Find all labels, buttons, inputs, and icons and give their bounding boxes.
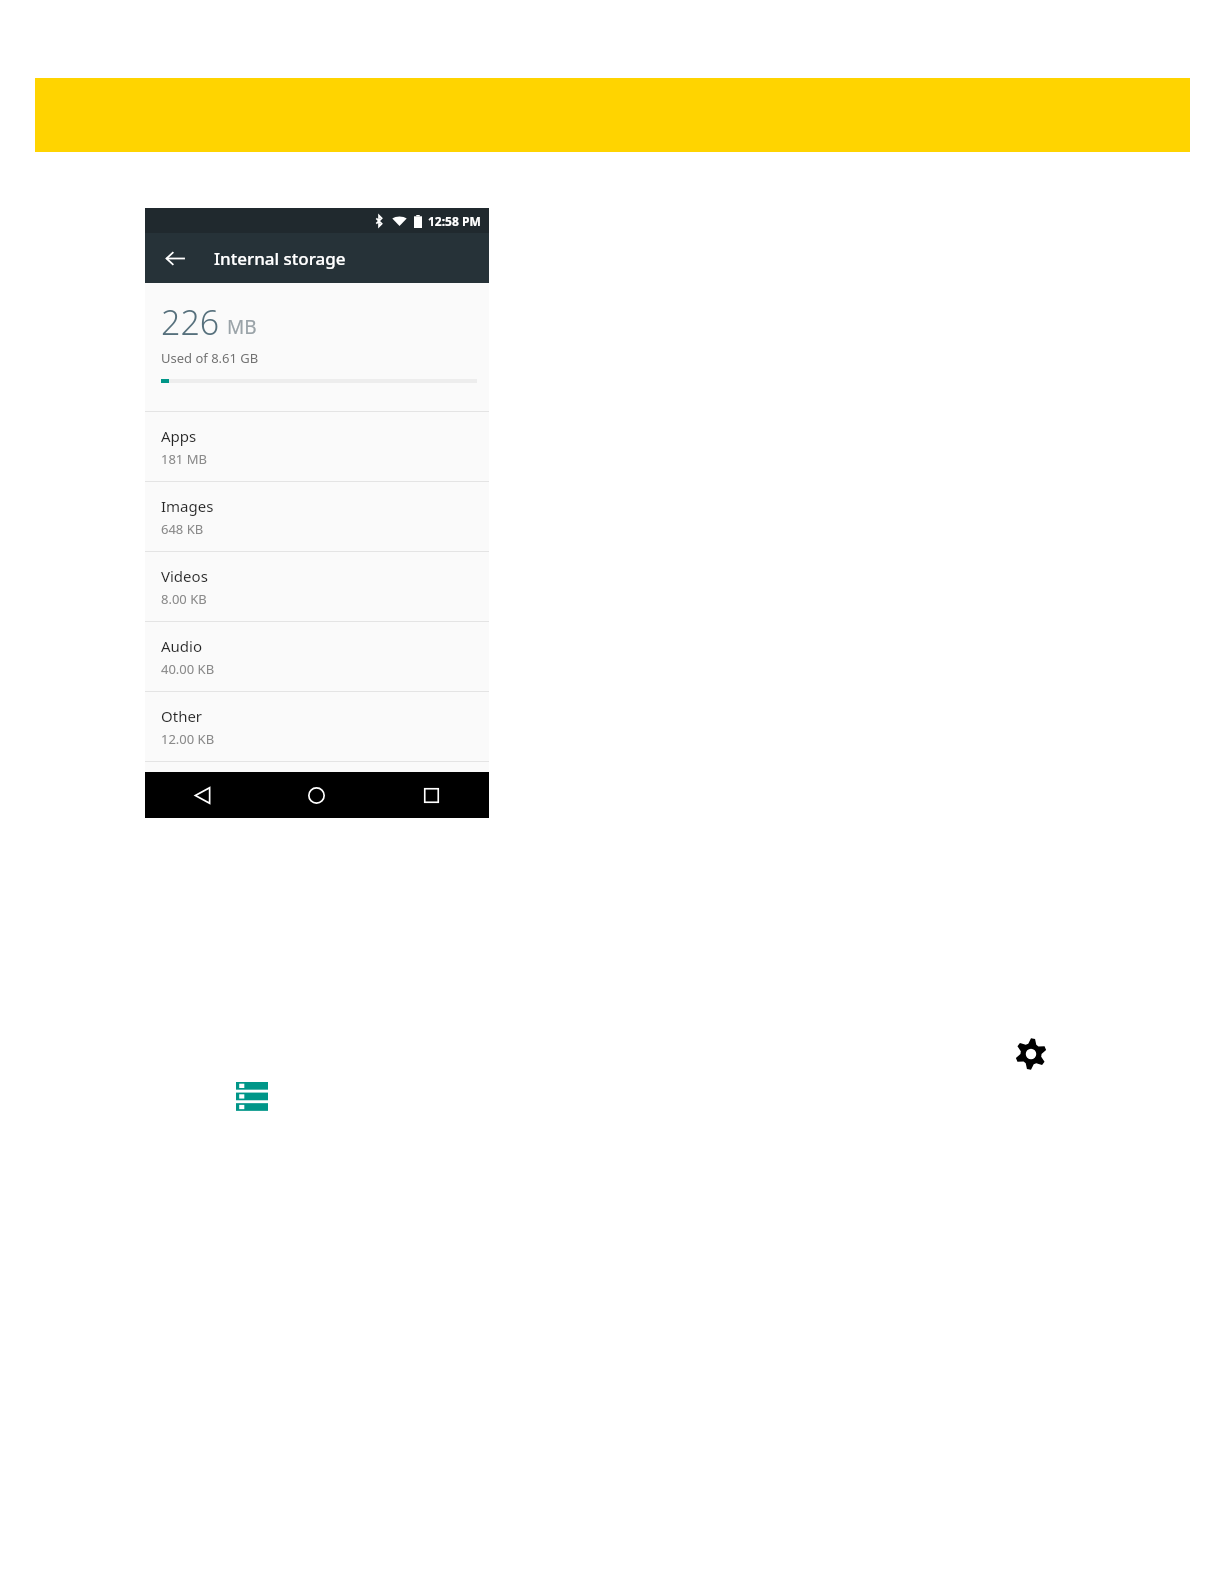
button[interactable]: Back bbox=[145, 772, 259, 818]
button[interactable]: Images bbox=[145, 482, 489, 551]
button[interactable]: Settings bbox=[1014, 1037, 1048, 1071]
staticText: Used of 8.61 GB bbox=[161, 349, 259, 367]
staticText: 181 MB bbox=[161, 450, 207, 468]
staticText: Audio bbox=[161, 636, 203, 656]
staticText: 8.00 KB bbox=[161, 590, 207, 608]
button[interactable]: Storage bbox=[236, 1082, 268, 1111]
staticText: Internal storage bbox=[214, 247, 346, 270]
button[interactable]: 226 bbox=[145, 283, 489, 411]
button[interactable]: Apps bbox=[145, 412, 489, 481]
staticText: 648 KB bbox=[161, 520, 204, 538]
staticText: Videos bbox=[161, 566, 208, 586]
staticText: 40.00 KB bbox=[161, 660, 215, 678]
button[interactable]: Videos bbox=[145, 552, 489, 621]
staticText: Other bbox=[161, 706, 203, 726]
staticText: MB bbox=[227, 314, 257, 340]
button[interactable]: Home bbox=[259, 772, 374, 818]
staticText: 12.00 KB bbox=[161, 730, 215, 748]
button[interactable]: Recents bbox=[374, 772, 489, 818]
button[interactable]: Back bbox=[157, 240, 193, 276]
button[interactable]: Audio bbox=[145, 622, 489, 691]
staticText: Apps bbox=[161, 426, 197, 446]
button[interactable]: Other bbox=[145, 692, 489, 761]
staticText: 12:58 PM bbox=[428, 213, 481, 229]
staticText: Images bbox=[161, 496, 214, 516]
staticText: 226 bbox=[161, 299, 220, 345]
